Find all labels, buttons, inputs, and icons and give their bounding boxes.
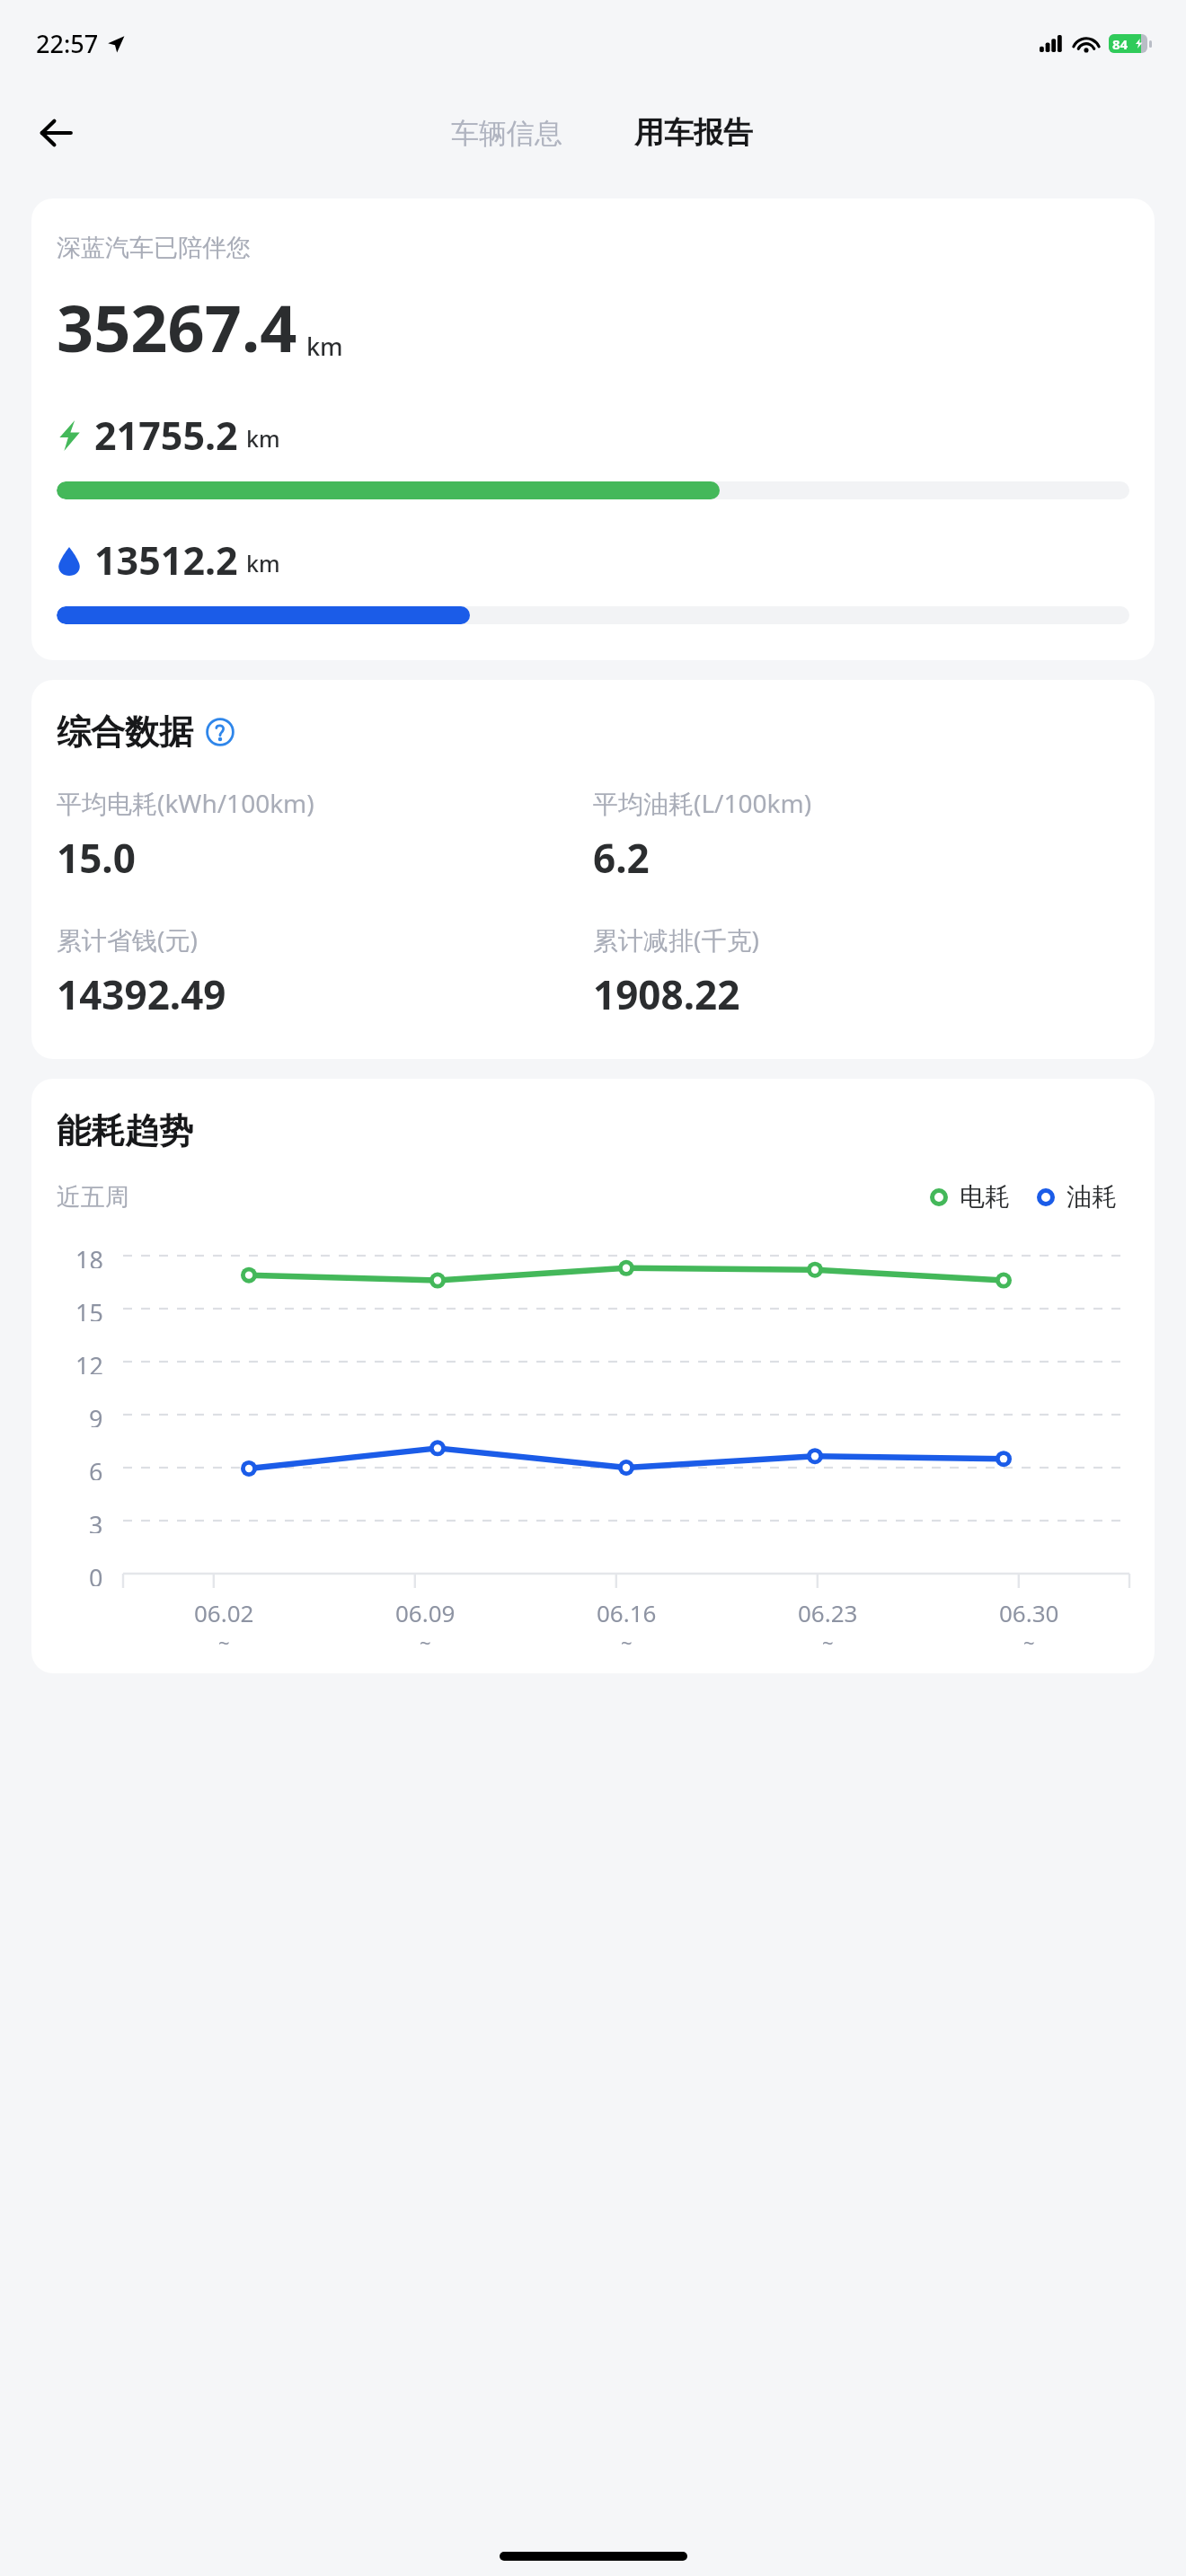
staticText: 06.02 bbox=[194, 1597, 254, 1628]
button[interactable]: 电耗 bbox=[930, 1181, 1010, 1213]
staticText: 累计减排(千克) bbox=[593, 922, 759, 957]
staticText: 06.09 bbox=[395, 1597, 456, 1628]
staticText: 深蓝汽车已陪伴您 bbox=[57, 233, 251, 263]
button[interactable]: 综合数据 bbox=[31, 680, 1155, 1059]
staticText: 06.23 bbox=[798, 1597, 858, 1628]
staticText: 6.2 bbox=[593, 831, 650, 885]
staticText: 6 bbox=[89, 1455, 103, 1480]
staticText: 平均油耗(L/100km) bbox=[593, 786, 812, 820]
staticText: 能耗趋势 bbox=[57, 1109, 193, 1152]
staticText: km bbox=[306, 330, 343, 363]
staticText: 1908.22 bbox=[593, 967, 740, 1021]
staticText: 车辆信息 bbox=[451, 116, 562, 151]
staticText: 12 bbox=[75, 1349, 103, 1374]
staticText: 累计省钱(元) bbox=[57, 922, 198, 957]
staticText: 15 bbox=[75, 1296, 103, 1321]
staticText: ~ bbox=[621, 1628, 633, 1655]
staticText: 18 bbox=[75, 1243, 103, 1268]
button[interactable]: 用车报告 bbox=[622, 105, 766, 161]
staticText: 平均电耗(kWh/100km) bbox=[57, 786, 314, 820]
staticText: 35267.4 bbox=[57, 283, 297, 371]
staticText: km bbox=[246, 423, 280, 454]
button[interactable]: 帮助 bbox=[204, 716, 236, 748]
staticText: 06.16 bbox=[597, 1597, 657, 1628]
staticText: 近五周 bbox=[57, 1182, 129, 1213]
staticText: 13512.2 bbox=[94, 534, 238, 587]
staticText: 9 bbox=[89, 1402, 103, 1427]
staticText: 06.30 bbox=[999, 1597, 1059, 1628]
staticText: 3 bbox=[89, 1508, 103, 1533]
staticText: 21755.2 bbox=[94, 409, 238, 462]
staticText: ~ bbox=[218, 1628, 230, 1655]
staticText: ~ bbox=[822, 1628, 834, 1655]
staticText: 84 bbox=[1112, 35, 1128, 53]
staticText: ~ bbox=[420, 1628, 431, 1655]
button[interactable]: Back bbox=[27, 104, 84, 162]
staticText: ~ bbox=[1023, 1628, 1035, 1655]
staticText: 综合数据 bbox=[57, 710, 193, 754]
staticText: 22:57 bbox=[36, 27, 99, 60]
staticText: 0 bbox=[89, 1561, 103, 1586]
staticText: 15.0 bbox=[57, 831, 136, 885]
staticText: 电耗 bbox=[960, 1181, 1010, 1213]
staticText: 油耗 bbox=[1067, 1181, 1117, 1213]
button[interactable]: 油耗 bbox=[1037, 1181, 1117, 1213]
button[interactable]: 深蓝汽车已陪伴您 bbox=[31, 198, 1155, 660]
staticText: km bbox=[246, 548, 280, 578]
button[interactable]: 车辆信息 bbox=[438, 107, 575, 160]
staticText: 用车报告 bbox=[634, 114, 753, 152]
staticText: 14392.49 bbox=[57, 967, 226, 1021]
